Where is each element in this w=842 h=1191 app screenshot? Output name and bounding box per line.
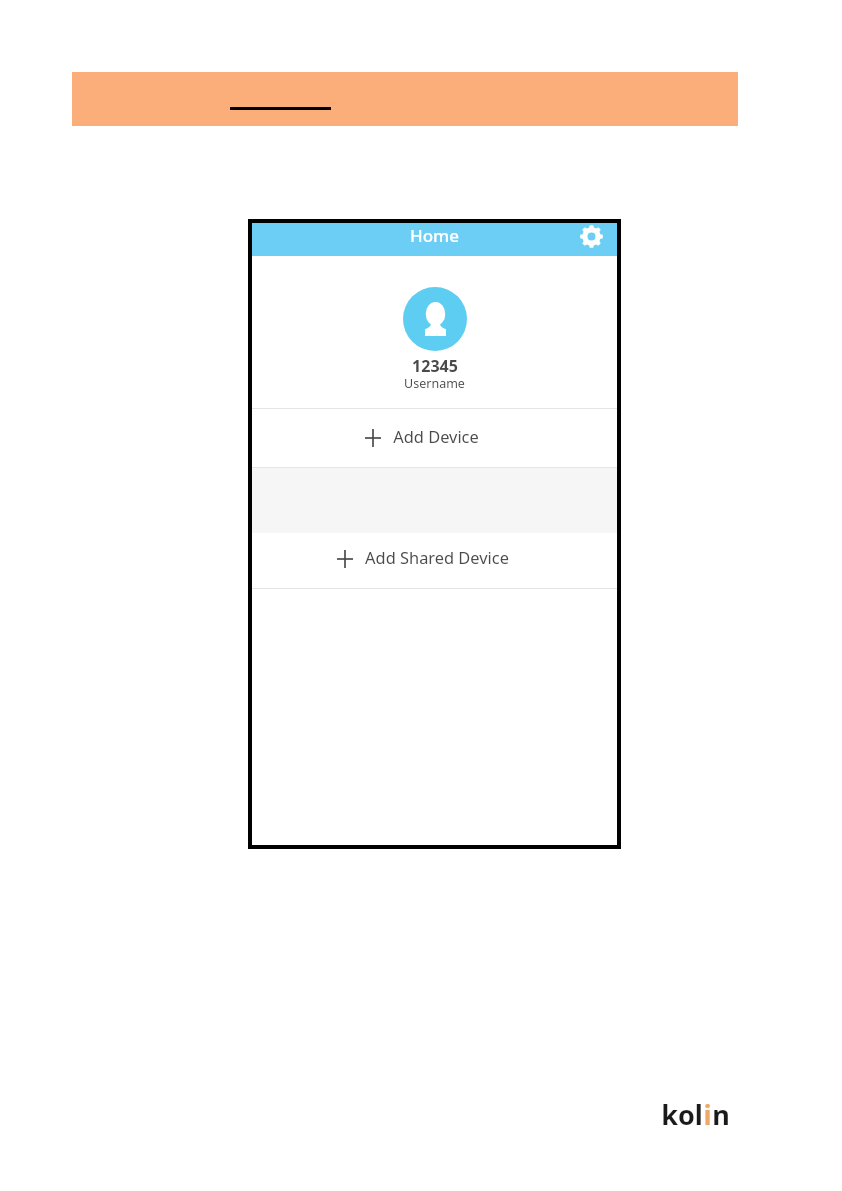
staticText: kol <box>661 1096 703 1133</box>
button[interactable]: Add Device <box>252 409 617 467</box>
staticText: Username <box>404 375 465 392</box>
button[interactable]: Add Shared Device <box>252 533 617 588</box>
staticText: n <box>712 1096 730 1133</box>
staticText: 12345 <box>412 355 458 377</box>
button[interactable]: Profile <box>403 287 467 351</box>
staticText: i <box>703 1096 712 1133</box>
staticText: Add Shared Device <box>365 546 509 568</box>
button[interactable]: Settings <box>578 223 604 249</box>
staticText: Add Device <box>393 425 479 447</box>
staticText: Home <box>410 224 459 247</box>
